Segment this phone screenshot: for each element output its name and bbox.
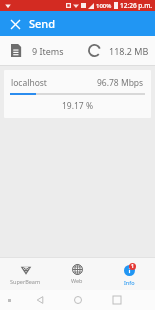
staticText: 12:26 p.m. [120,1,153,10]
staticText: 118.2 MB [109,45,149,57]
staticText: 96.78 Mbps [97,77,144,89]
staticText: Web [71,277,83,284]
button[interactable]: Recents [108,291,126,309]
staticText: 100% [96,2,112,10]
button[interactable]: Back [31,291,49,309]
button[interactable]: SuperBeam [0,258,51,290]
button[interactable]: 1 [103,258,155,290]
staticText: Send [29,16,56,31]
staticText: 19.17 % [62,100,93,112]
staticText: 9 Items [32,45,64,57]
button[interactable]: Close [5,14,25,34]
staticText: localhost [11,77,47,89]
button[interactable]: localhost [4,70,151,118]
staticText: 1 [131,263,134,270]
button[interactable]: Web [51,258,103,290]
staticText: Info [124,279,135,286]
button[interactable]: Home [69,291,87,309]
staticText: SuperBeam [10,278,41,285]
